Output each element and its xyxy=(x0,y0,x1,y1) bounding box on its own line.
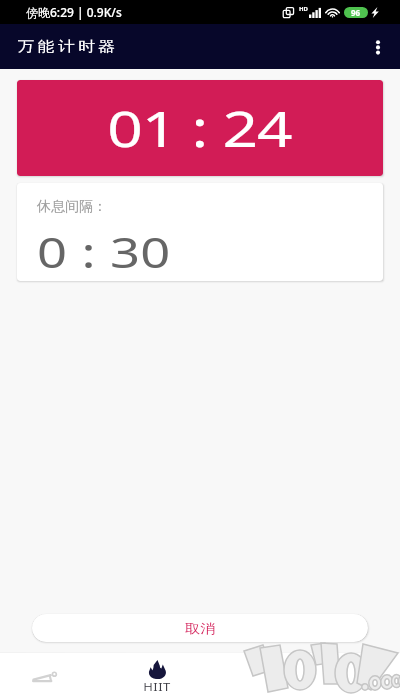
button[interactable]: Exercises xyxy=(0,653,88,700)
staticText: HIIT xyxy=(143,679,171,694)
staticText: 休息间隔： xyxy=(37,198,107,216)
staticText: 傍晚6:29 | 0.9K/s xyxy=(26,4,122,20)
staticText: 取消 xyxy=(184,620,216,636)
button[interactable]: HIIT xyxy=(107,653,207,700)
staticText: 96 xyxy=(351,7,361,18)
staticText: 01 : 24 xyxy=(107,95,293,162)
staticText: HD xyxy=(299,5,308,13)
button[interactable]: 01 : 24 xyxy=(17,80,383,176)
staticText: 0 : 30 xyxy=(37,224,171,280)
button[interactable]: More options xyxy=(356,25,400,69)
button[interactable]: 取消 xyxy=(32,614,368,642)
staticText: 万能计时器 xyxy=(16,38,117,56)
button[interactable]: 休息间隔： xyxy=(17,183,383,281)
